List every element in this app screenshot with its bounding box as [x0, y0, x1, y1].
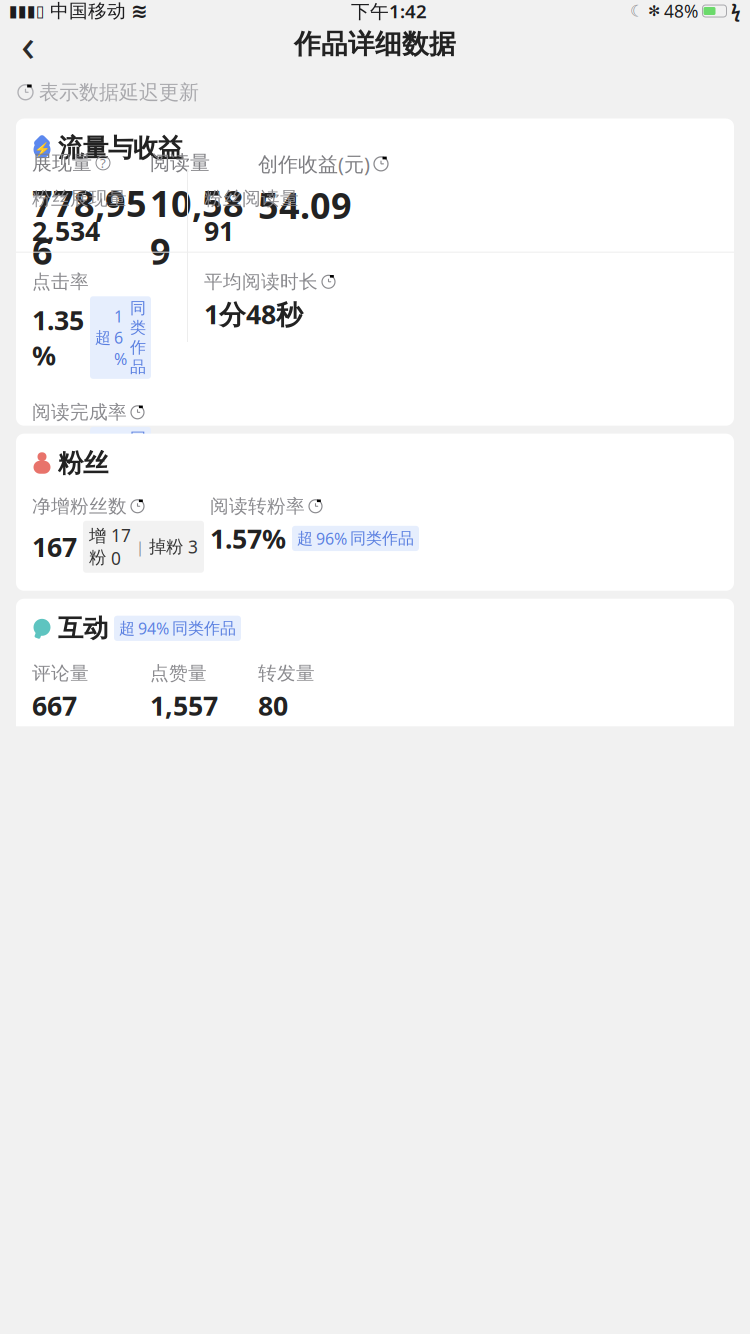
staticText: 超 — [95, 328, 111, 347]
staticText: 超 — [297, 529, 313, 548]
staticText: ☾ — [630, 2, 644, 20]
staticText: ▮▮▮▯ — [9, 2, 45, 20]
staticText: ≋ — [131, 0, 148, 22]
staticText: 超 — [95, 458, 111, 478]
staticText: 667 — [32, 688, 77, 723]
staticText: 掉粉 — [149, 536, 183, 557]
staticText: 54.09 — [258, 181, 352, 229]
staticText: 中国移动 — [50, 0, 126, 22]
staticText: 粉丝阅读量 — [204, 187, 299, 210]
staticText: 80.36% — [32, 433, 84, 503]
staticText: 点赞量 — [150, 662, 207, 685]
staticText: 流量与收益 — [58, 133, 183, 164]
staticText: 超 — [119, 618, 135, 638]
staticText: 阅读转粉率 — [210, 495, 305, 518]
staticText: 96% — [316, 528, 347, 549]
staticText: 同类作品 — [130, 298, 146, 377]
staticText: 10,589 — [150, 179, 244, 275]
staticText: 同类作品 — [130, 429, 146, 507]
staticText: 778,956 — [32, 179, 147, 275]
staticText: 1,557 — [150, 688, 218, 723]
staticText: 阅读量 — [150, 151, 210, 175]
staticText: 82% — [114, 436, 127, 500]
staticText: 阅读完成率 — [32, 401, 127, 424]
staticText: 1.57% — [210, 521, 286, 556]
staticText: ϟ — [731, 0, 741, 22]
staticText: 1.35% — [32, 302, 84, 373]
staticText: 下午1:42 — [351, 0, 427, 23]
staticText: 创作收益(元) — [258, 151, 370, 177]
staticText: 粉丝展现量 — [32, 187, 127, 210]
staticText: 1分48秒 — [204, 296, 303, 332]
staticText: 展现量 — [32, 151, 92, 175]
staticText: ? — [100, 154, 106, 172]
staticText: ‹ — [21, 14, 35, 74]
staticText: 80 — [258, 688, 288, 723]
staticText: 94% — [138, 618, 169, 639]
staticText: 同类作品 — [172, 618, 236, 638]
staticText: ⚡ — [33, 141, 50, 157]
staticText: 增粉 — [89, 525, 106, 568]
staticText: 互动 — [58, 613, 108, 644]
staticText: 同类作品 — [350, 529, 414, 548]
staticText: 评论量 — [32, 662, 89, 685]
staticText: 转发量 — [258, 662, 315, 685]
staticText: 2,534 — [32, 213, 100, 248]
staticText: 平均阅读时长 — [204, 270, 318, 293]
staticText: 3 — [188, 535, 198, 558]
staticText: 170 — [111, 524, 131, 570]
staticText: | — [136, 537, 144, 556]
staticText: 16% — [114, 306, 127, 369]
staticText: 表示数据延迟更新 — [39, 80, 199, 105]
staticText: 167 — [32, 529, 77, 564]
button[interactable]: 返回 — [6, 22, 50, 66]
staticText: 48% — [664, 0, 698, 22]
staticText: 91 — [204, 213, 234, 248]
staticText: 净增粉丝数 — [32, 495, 127, 518]
staticText: 作品详细数据 — [294, 28, 456, 60]
staticText: ✻ — [648, 3, 660, 19]
staticText: 点击率 — [32, 270, 89, 293]
staticText: 粉丝 — [58, 448, 108, 479]
